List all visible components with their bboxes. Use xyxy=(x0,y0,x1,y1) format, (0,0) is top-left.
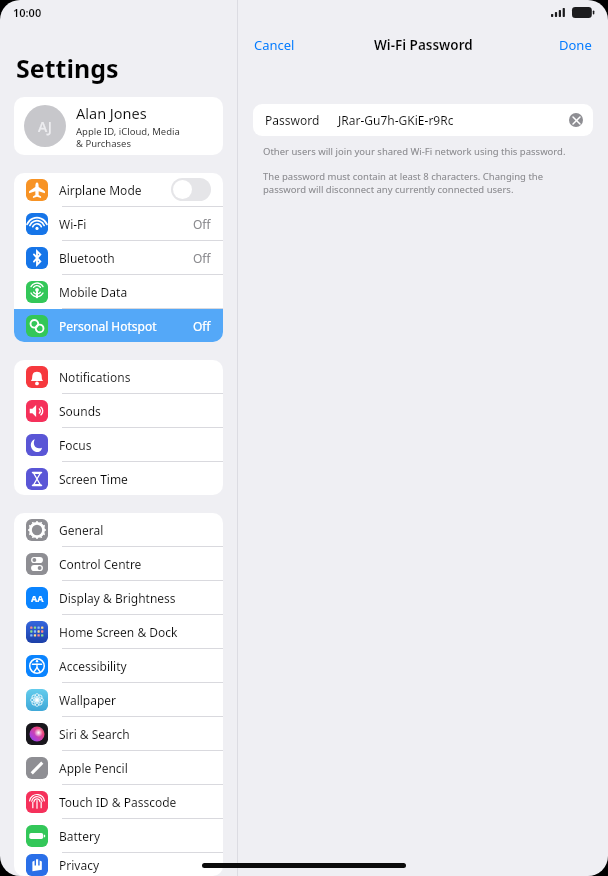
button[interactable]: AJ xyxy=(14,97,223,155)
button[interactable]: Touch ID & Passcode xyxy=(14,785,223,818)
staticText: Notifications xyxy=(59,369,211,385)
button[interactable]: Screen Time xyxy=(14,462,223,495)
staticText: Touch ID & Passcode xyxy=(59,794,211,810)
button[interactable]: Personal Hotspot xyxy=(14,309,223,342)
staticText: Personal Hotspot xyxy=(59,318,193,334)
staticText: Home Screen & Dock xyxy=(59,624,211,640)
staticText: Done xyxy=(559,36,592,54)
staticText: Control Centre xyxy=(59,556,211,572)
button[interactable]: Password xyxy=(253,104,593,136)
button[interactable]: Accessibility xyxy=(14,649,223,682)
staticText: Settings xyxy=(16,51,119,85)
staticText: Accessibility xyxy=(59,658,211,674)
staticText: Battery xyxy=(59,828,211,844)
staticText: Sounds xyxy=(59,403,211,419)
staticText: Airplane Mode xyxy=(59,182,171,198)
staticText: Off xyxy=(193,318,211,334)
staticText: Focus xyxy=(59,437,211,453)
staticText: Privacy xyxy=(59,857,211,873)
staticText: Alan Jones xyxy=(76,103,147,123)
staticText: Off xyxy=(193,216,211,232)
staticText: Wallpaper xyxy=(59,692,211,708)
button[interactable]: Cancel xyxy=(246,32,303,58)
button[interactable]: Privacy xyxy=(14,853,223,876)
button[interactable]: Wallpaper xyxy=(14,683,223,716)
button[interactable]: Sounds xyxy=(14,394,223,427)
staticText: Off xyxy=(193,250,211,266)
button[interactable]: Notifications xyxy=(14,360,223,393)
button[interactable]: Siri & Search xyxy=(14,717,223,750)
staticText: Apple ID, iCloud, Media & Purchases xyxy=(76,125,180,150)
button[interactable]: Bluetooth xyxy=(14,241,223,274)
button[interactable]: General xyxy=(14,513,223,546)
button[interactable]: Done xyxy=(551,32,600,58)
staticText: AJ xyxy=(38,117,52,136)
button[interactable]: Battery xyxy=(14,819,223,852)
staticText: General xyxy=(59,522,211,538)
staticText: AA xyxy=(31,592,44,604)
button[interactable]: Apple Pencil xyxy=(14,751,223,784)
staticText: Siri & Search xyxy=(59,726,211,742)
staticText: Wi-Fi Password xyxy=(374,36,473,54)
staticText: Cancel xyxy=(254,36,295,54)
staticText: Wi-Fi xyxy=(59,216,193,232)
button[interactable]: Control Centre xyxy=(14,547,223,580)
staticText: JRar-Gu7h-GKiE-r9Rc xyxy=(338,112,569,128)
staticText: The password must contain at least 8 cha… xyxy=(263,170,568,196)
staticText: 10:00 xyxy=(13,5,42,20)
staticText: Display & Brightness xyxy=(59,590,211,606)
staticText: Password xyxy=(265,112,320,128)
button[interactable]: Airplane Mode xyxy=(14,173,223,206)
button[interactable]: Home Screen & Dock xyxy=(14,615,223,648)
button[interactable]: Clear password xyxy=(569,113,583,127)
staticText: Mobile Data xyxy=(59,284,211,300)
staticText: Apple Pencil xyxy=(59,760,211,776)
button[interactable]: Mobile Data xyxy=(14,275,223,308)
staticText: Other users will join your shared Wi-Fi … xyxy=(263,145,566,158)
staticText: Screen Time xyxy=(59,471,211,487)
button[interactable]: Wi-Fi xyxy=(14,207,223,240)
button[interactable]: Focus xyxy=(14,428,223,461)
button[interactable]: AA xyxy=(14,581,223,614)
staticText: Bluetooth xyxy=(59,250,193,266)
